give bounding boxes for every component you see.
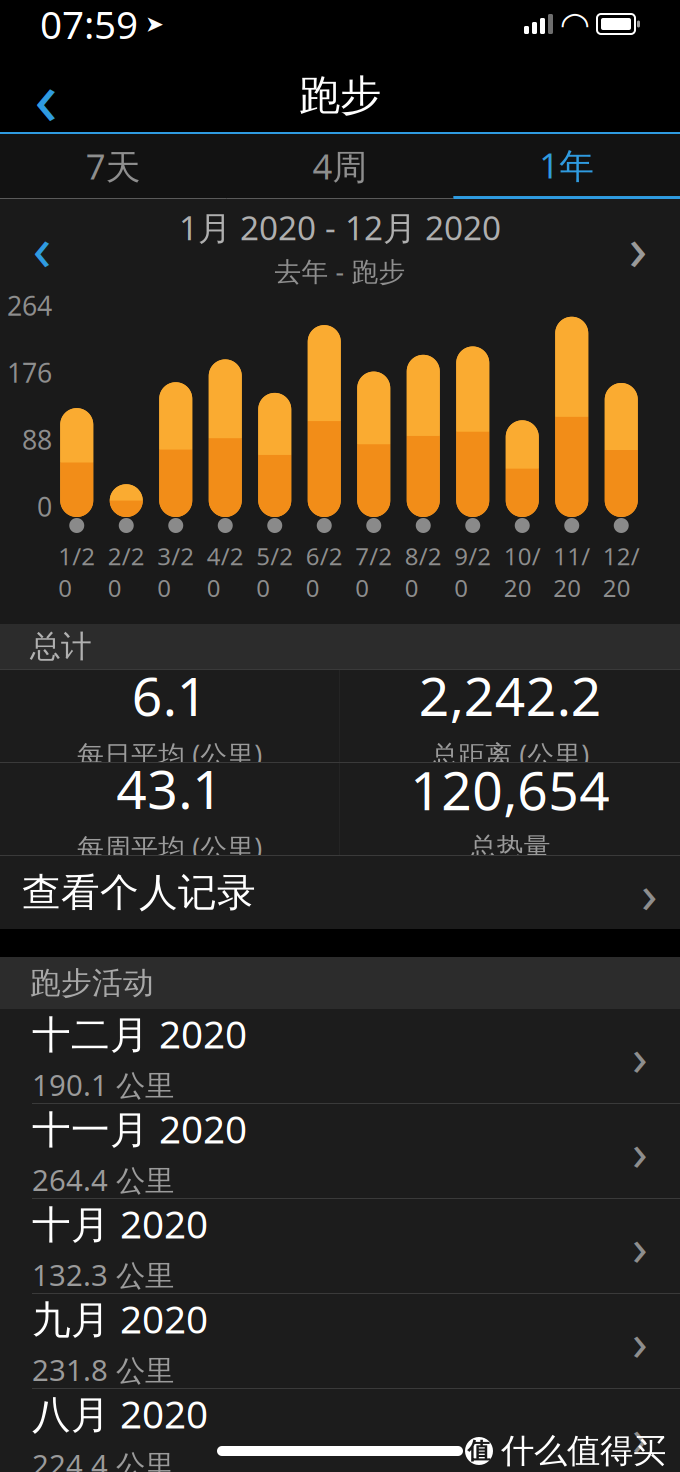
staticText: ‹ [34, 44, 58, 147]
staticText: ◠ [561, 4, 588, 44]
staticText: 九月 2020 [32, 1293, 208, 1344]
staticText: › [632, 1022, 648, 1090]
staticText: ➤ [145, 11, 164, 37]
button[interactable]: Previous period [12, 218, 72, 276]
staticText: 264 [7, 288, 52, 323]
staticText: 231.8 公里 [32, 1350, 174, 1389]
button[interactable]: 十月 2020 [0, 1198, 680, 1293]
staticText: 值 [467, 1437, 490, 1465]
staticText: › [632, 1212, 648, 1280]
staticText: 每日平均 (公里) [77, 737, 262, 772]
staticText: › [632, 1307, 648, 1375]
staticText: 190.1 公里 [32, 1065, 174, 1104]
staticText: 跑步活动 [30, 964, 154, 1002]
button[interactable]: 查看个人记录 [0, 856, 680, 929]
button[interactable]: Back [14, 62, 78, 128]
staticText: 120,654 [410, 754, 610, 825]
staticText: 3/20 [157, 540, 194, 604]
staticText: 总计 [30, 628, 92, 665]
staticText: 2,242.2 [419, 660, 602, 731]
staticText: 132.3 公里 [32, 1255, 174, 1294]
staticText: 5/20 [256, 540, 293, 604]
staticText: 4周 [312, 143, 367, 189]
staticText: 11/20 [553, 540, 590, 604]
staticText: 十一月 2020 [32, 1103, 247, 1154]
button[interactable]: 十一月 2020 [0, 1103, 680, 1198]
staticText: 10/20 [504, 540, 541, 604]
staticText: 0 [37, 489, 52, 524]
staticText: 88 [22, 422, 52, 457]
staticText: 1/20 [58, 540, 95, 604]
staticText: 43.1 [116, 753, 223, 824]
staticText: 跑步 [299, 70, 381, 121]
button[interactable]: 十二月 2020 [0, 1009, 680, 1103]
button[interactable]: 八月 2020 [0, 1388, 680, 1472]
staticText: 12/20 [603, 540, 640, 604]
staticText: 1月 2020 - 12月 2020 [179, 205, 501, 249]
button[interactable]: 1年 [453, 134, 680, 199]
staticText: 每周平均 (公里) [77, 830, 262, 865]
button[interactable]: 7天 [0, 134, 227, 199]
staticText: 264.4 公里 [32, 1160, 174, 1199]
staticText: 7/20 [355, 540, 392, 604]
staticText: 十月 2020 [32, 1198, 208, 1249]
button[interactable]: 4周 [227, 134, 453, 199]
staticText: 2/20 [108, 540, 145, 604]
staticText: › [632, 1402, 648, 1470]
staticText: › [632, 1117, 648, 1185]
staticText: 176 [7, 355, 52, 390]
staticText: 总距离 (公里) [431, 737, 589, 772]
staticText: 1年 [539, 142, 594, 188]
staticText: 7天 [86, 143, 141, 189]
staticText: ‹ [32, 206, 51, 288]
staticText: 224.4 公里 [32, 1445, 174, 1472]
staticText: 八月 2020 [32, 1388, 208, 1439]
staticText: 9/20 [454, 540, 491, 604]
staticText: 十二月 2020 [32, 1008, 247, 1059]
button[interactable]: 九月 2020 [0, 1293, 680, 1388]
staticText: 去年 - 跑步 [274, 253, 405, 289]
staticText: 总热量 [470, 831, 551, 864]
staticText: 查看个人记录 [22, 869, 256, 916]
staticText: 6/20 [306, 540, 343, 604]
staticText: 6.1 [132, 660, 208, 731]
staticText: 07:59 [40, 0, 138, 50]
button[interactable]: Next period [608, 218, 668, 276]
staticText: 什么值得买 [501, 1430, 666, 1471]
staticText: › [641, 857, 658, 928]
staticText: 4/20 [207, 540, 244, 604]
staticText: 8/20 [405, 540, 442, 604]
staticText: › [628, 206, 647, 288]
